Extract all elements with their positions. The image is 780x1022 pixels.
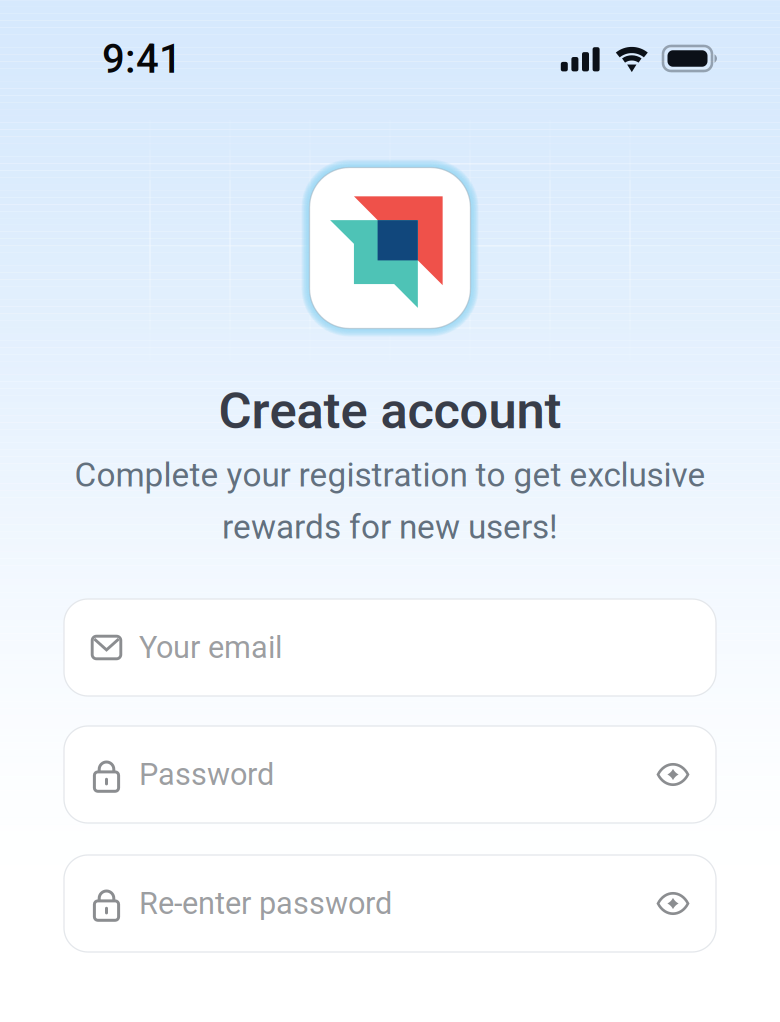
button[interactable]: Password bbox=[64, 726, 716, 823]
staticText: Your email bbox=[139, 629, 282, 665]
staticText: 9:41 bbox=[102, 36, 182, 82]
staticText: Password bbox=[139, 756, 274, 792]
button[interactable]: Show password bbox=[638, 739, 708, 809]
staticText: Re-enter password bbox=[139, 885, 392, 921]
staticText: Create account bbox=[218, 381, 561, 441]
staticText: Complete your registration to get exclus… bbox=[74, 455, 705, 495]
button[interactable]: Your email bbox=[64, 599, 716, 696]
button[interactable]: Re-enter password bbox=[64, 855, 716, 952]
staticText: rewards for new users! bbox=[222, 507, 558, 547]
button[interactable]: Show password bbox=[638, 868, 708, 938]
